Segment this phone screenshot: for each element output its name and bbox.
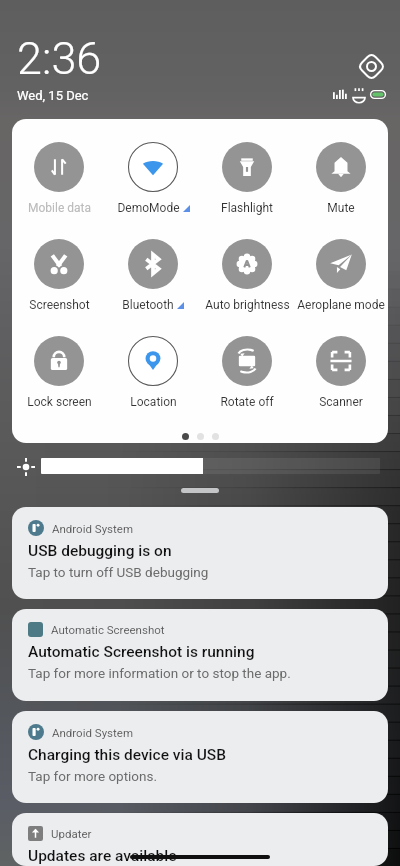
- staticText: Updater: [51, 827, 92, 840]
- button[interactable]: Flashlight: [200, 142, 294, 215]
- button[interactable]: Updater: [12, 813, 388, 866]
- button[interactable]: DemoMode: [106, 142, 200, 215]
- button[interactable]: Mobile data: [12, 142, 106, 215]
- staticText: Screenshot: [29, 298, 90, 312]
- staticText: Charging this device via USB: [28, 746, 226, 764]
- staticText: Flashlight: [221, 201, 273, 215]
- staticText: Tap for more information or to stop the …: [28, 665, 291, 681]
- button[interactable]: Mute: [294, 142, 388, 215]
- staticText: Location: [130, 395, 177, 409]
- staticText: Tap to turn off USB debugging: [28, 564, 209, 580]
- staticText: DemoMode: [117, 201, 180, 215]
- button[interactable]: Expand quick settings: [181, 488, 219, 493]
- staticText: Scanner: [319, 395, 363, 409]
- button[interactable]: Screenshot: [12, 239, 106, 312]
- staticText: 2:36: [17, 32, 102, 85]
- staticText: Auto brightness: [205, 298, 290, 312]
- button[interactable]: Location: [106, 336, 200, 409]
- button[interactable]: Aeroplane mode: [294, 239, 388, 312]
- button[interactable]: Android System: [12, 507, 388, 599]
- button[interactable]: Auto brightness: [200, 239, 294, 312]
- staticText: Tap for more options.: [28, 768, 158, 784]
- button[interactable]: Bluetooth: [106, 239, 200, 312]
- staticText: Wed, 15 Dec: [17, 88, 89, 103]
- staticText: Lock screen: [27, 395, 92, 409]
- staticText: Android System: [52, 726, 133, 739]
- button[interactable]: Rotate off: [200, 336, 294, 409]
- staticText: USB debugging is on: [28, 542, 172, 560]
- staticText: Bluetooth: [122, 298, 174, 312]
- staticText: Android System: [52, 522, 133, 535]
- staticText: Mobile data: [28, 201, 91, 215]
- staticText: Automatic Screenshot: [51, 623, 165, 636]
- button[interactable]: Settings: [357, 52, 386, 81]
- button[interactable]: Lock screen: [12, 336, 106, 409]
- button[interactable]: Automatic Screenshot: [12, 609, 388, 701]
- button[interactable]: Android System: [12, 711, 388, 803]
- staticText: Updates are available: [28, 847, 177, 865]
- staticText: Rotate off: [220, 395, 274, 409]
- staticText: Aeroplane mode: [297, 298, 385, 312]
- staticText: Automatic Screenshot is running: [28, 643, 255, 661]
- staticText: Mute: [327, 201, 355, 215]
- button[interactable]: Brightness: [17, 458, 380, 474]
- button[interactable]: Scanner: [294, 336, 388, 409]
